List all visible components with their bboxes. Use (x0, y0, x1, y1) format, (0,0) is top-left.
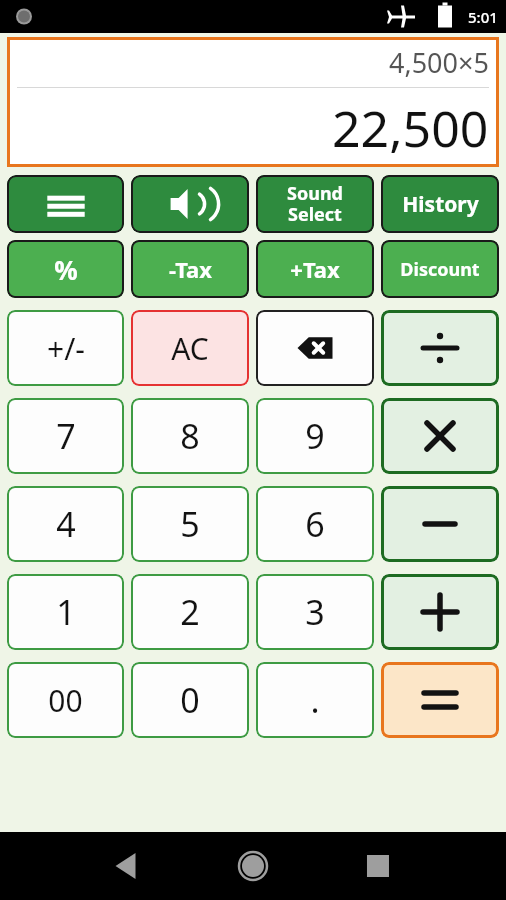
staticText: . (310, 677, 320, 723)
button[interactable]: 1 (7, 574, 124, 650)
button[interactable]: History (381, 175, 499, 233)
staticText: +Tax (290, 254, 340, 284)
staticText: Sound Select (287, 181, 343, 227)
staticText: 8 (180, 413, 200, 459)
button[interactable]: 5 (131, 486, 249, 562)
staticText: 5:01 (468, 7, 498, 27)
button[interactable]: Equals (381, 662, 499, 738)
button[interactable]: +Tax (256, 240, 374, 298)
staticText: 6 (305, 501, 325, 547)
button[interactable]: -Tax (131, 240, 249, 298)
staticText: 5 (180, 501, 200, 547)
button[interactable]: Minus (381, 486, 499, 562)
button[interactable]: Multiply (381, 398, 499, 474)
staticText: 7 (56, 413, 76, 459)
button[interactable]: 7 (7, 398, 124, 474)
button[interactable]: 4,500×5 (7, 37, 499, 167)
staticText: 4 (56, 501, 76, 547)
button[interactable]: +/- (7, 310, 124, 386)
button[interactable]: Discount (381, 240, 499, 298)
button[interactable]: Backspace (256, 310, 374, 386)
staticText: History (402, 190, 479, 219)
button[interactable]: % (7, 240, 124, 298)
staticText: +/- (47, 328, 85, 369)
staticText: % (54, 252, 78, 287)
button[interactable]: . (256, 662, 374, 738)
staticText: 9 (305, 413, 325, 459)
button[interactable]: 4 (7, 486, 124, 562)
button[interactable]: Sound Select (256, 175, 374, 233)
button[interactable]: Menu (7, 175, 124, 233)
staticText: 1 (56, 589, 76, 635)
button[interactable]: Sound on (131, 175, 249, 233)
staticText: -Tax (169, 254, 212, 284)
button[interactable]: 8 (131, 398, 249, 474)
staticText: 0 (180, 677, 200, 723)
staticText: 00 (48, 680, 83, 721)
staticText: 22,500 (332, 94, 489, 162)
staticText: AC (171, 328, 209, 369)
button[interactable]: 6 (256, 486, 374, 562)
button[interactable]: Plus (381, 574, 499, 650)
button[interactable]: 0 (131, 662, 249, 738)
button[interactable]: 2 (131, 574, 249, 650)
staticText: Discount (400, 257, 480, 282)
staticText: 3 (305, 589, 325, 635)
staticText: 2 (180, 589, 200, 635)
button[interactable]: Divide (381, 310, 499, 386)
staticText: 4,500×5 (389, 44, 489, 81)
button[interactable]: 3 (256, 574, 374, 650)
button[interactable]: AC (131, 310, 249, 386)
button[interactable]: 9 (256, 398, 374, 474)
button[interactable]: 00 (7, 662, 124, 738)
